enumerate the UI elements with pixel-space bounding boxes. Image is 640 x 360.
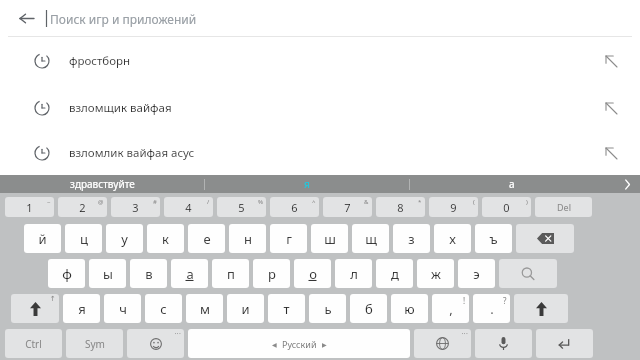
button[interactable]: а [171,259,208,288]
staticText: о [309,265,317,283]
button[interactable]: 6 [270,197,319,217]
staticText: % [258,198,263,206]
button[interactable]: Backspace [516,224,574,253]
button[interactable]: Insert query [602,99,620,117]
button[interactable]: а [410,175,614,193]
button[interactable]: б [350,294,387,323]
button[interactable]: м [186,294,223,323]
button[interactable]: More suggestions [614,175,640,193]
staticText: @ [98,198,104,206]
button[interactable]: Voice input [475,329,532,358]
staticText: 8 [397,200,404,215]
button[interactable]: й [24,224,61,253]
button[interactable]: Shift [514,294,568,323]
button[interactable]: ы [89,259,126,288]
staticText: ь [324,300,332,318]
staticText: е [203,230,211,248]
button[interactable]: Delete [535,197,592,217]
button[interactable]: щ [352,224,389,253]
button[interactable]: н [229,224,266,253]
staticText: ^ [312,198,316,206]
staticText: 2 [79,200,86,215]
button[interactable]: Enter [536,329,593,358]
button[interactable]: Search [499,259,557,288]
staticText: л [350,265,358,283]
staticText: фростборн [69,53,131,69]
button[interactable]: 4 [164,197,213,217]
button[interactable]: ь [309,294,346,323]
button[interactable]: взломщик вайфая [0,84,640,131]
button[interactable]: г [270,224,307,253]
button[interactable]: Поиск игр и приложений [46,0,640,36]
button[interactable]: ж [417,259,454,288]
button[interactable]: 0 [482,197,531,217]
staticText: с [160,300,167,318]
button[interactable]: р [253,259,290,288]
button[interactable]: я [205,175,409,193]
button[interactable]: здравствуйте [0,175,204,193]
staticText: я [78,300,86,318]
button[interactable]: , [432,294,469,323]
button[interactable]: ъ [475,224,512,253]
button[interactable]: Emoji [127,329,184,358]
staticText: ▶ [322,341,327,348]
staticText: в [145,265,153,283]
button[interactable]: х [434,224,471,253]
staticText: ⋯ [174,330,181,338]
button[interactable]: 9 [429,197,478,217]
button[interactable]: к [147,224,184,253]
button[interactable]: и [227,294,264,323]
button[interactable]: ф [48,259,85,288]
button[interactable]: о [294,259,331,288]
staticText: х [449,230,456,248]
button[interactable]: с [145,294,182,323]
staticText: ↑ [50,295,56,303]
button[interactable]: . [473,294,510,323]
staticText: Del [557,201,571,213]
staticText: . [490,300,494,318]
button[interactable]: е [188,224,225,253]
button[interactable]: ц [65,224,102,253]
button[interactable]: я [63,294,100,323]
button[interactable]: Ctrl [5,329,62,358]
staticText: ы [103,265,113,283]
button[interactable]: ч [104,294,141,323]
button[interactable]: 1 [5,197,54,217]
staticText: д [391,265,399,283]
staticText: 0 [503,200,510,215]
button[interactable]: т [268,294,305,323]
button[interactable]: л [335,259,372,288]
button[interactable]: 2 [58,197,107,217]
button[interactable]: Back [12,4,40,32]
button[interactable]: Insert query [602,144,620,162]
staticText: & [364,198,369,206]
button[interactable]: 8 [376,197,425,217]
button[interactable]: п [212,259,249,288]
staticText: й [38,230,47,248]
button[interactable]: Sym [66,329,123,358]
button[interactable]: Language [414,329,471,358]
button[interactable]: 3 [111,197,160,217]
button[interactable]: д [376,259,413,288]
staticText: 7 [344,200,351,215]
button[interactable]: у [106,224,143,253]
staticText: э [473,265,480,283]
button[interactable]: Insert query [602,52,620,70]
button[interactable]: Space [188,329,410,358]
button[interactable]: э [458,259,495,288]
button[interactable]: 7 [323,197,372,217]
staticText: ъ [489,230,498,248]
staticText: , [449,300,453,318]
button[interactable]: в [130,259,167,288]
staticText: м [200,300,210,318]
staticText: к [162,230,169,248]
button[interactable]: взломлик вайфая асус [0,131,640,175]
button[interactable]: фростборн [0,37,640,84]
button[interactable]: ш [311,224,348,253]
button[interactable]: 5 [217,197,266,217]
button[interactable]: ю [391,294,428,323]
button[interactable]: Shift [11,294,59,323]
staticText: 6 [291,200,298,215]
button[interactable]: з [393,224,430,253]
staticText: ~ [47,198,51,206]
